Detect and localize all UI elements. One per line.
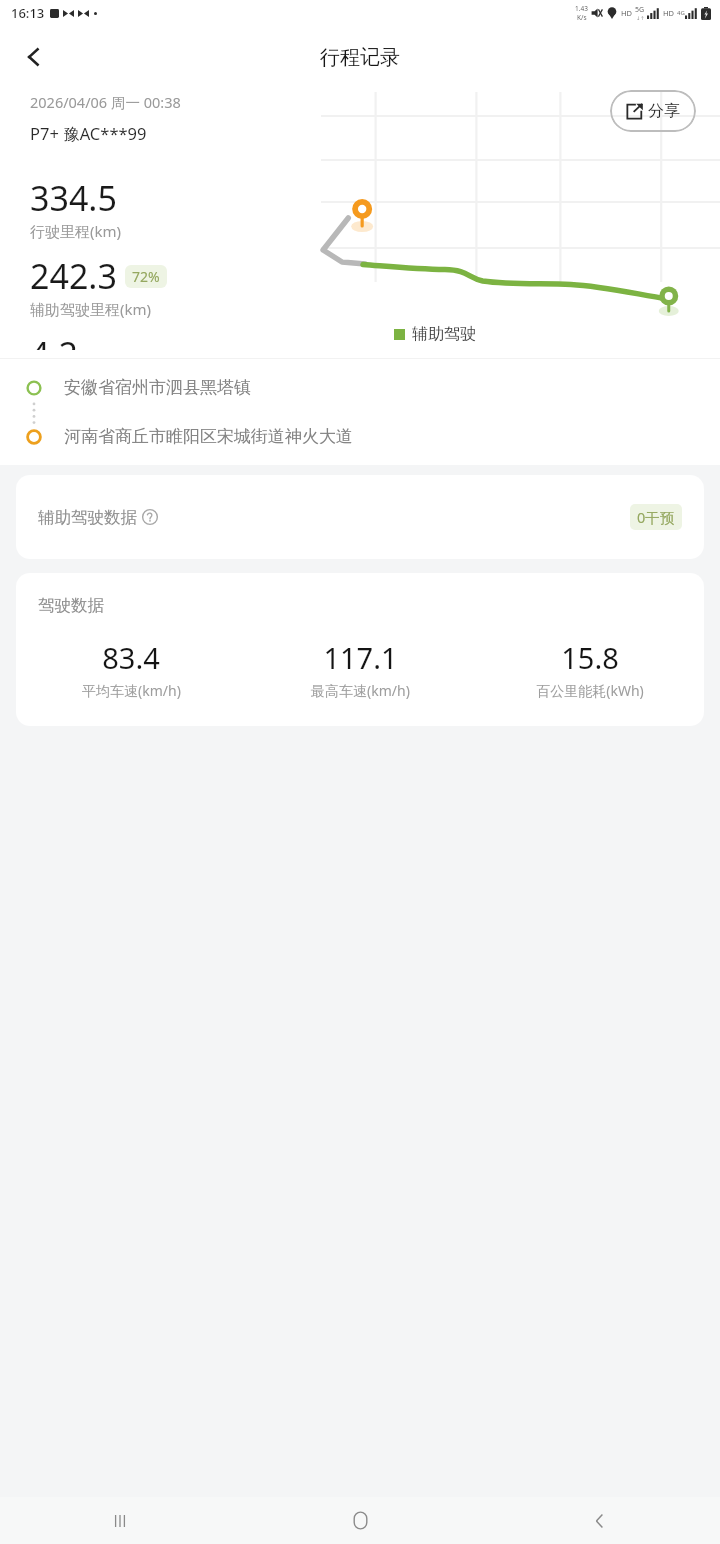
staticText: 2026/04/06 周一 00:38 bbox=[30, 92, 181, 112]
staticText: 百公里能耗(kWh) bbox=[536, 681, 644, 700]
button[interactable]: 返回 bbox=[480, 1497, 720, 1544]
staticText: 334.5 bbox=[30, 175, 117, 221]
button[interactable]: 辅助驾驶数据 bbox=[16, 475, 704, 559]
staticText: K/s bbox=[577, 13, 587, 22]
staticText: 行驶里程(km) bbox=[30, 221, 122, 241]
staticText: 5G bbox=[635, 5, 645, 15]
staticText: 驾驶数据 bbox=[38, 595, 104, 616]
button[interactable]: 返回 bbox=[10, 33, 58, 81]
staticText: 辅助驾驶数据 bbox=[38, 507, 137, 528]
staticText: 16:13 bbox=[11, 4, 45, 22]
staticText: 分享 bbox=[648, 101, 680, 121]
staticText: 辅助驾驶里程(km) bbox=[30, 299, 152, 319]
staticText: 平均车速(km/h) bbox=[82, 681, 181, 700]
staticText: 安徽省宿州市泗县黑塔镇 bbox=[64, 377, 251, 398]
staticText: 4G bbox=[677, 9, 685, 17]
staticText: 0干预 bbox=[637, 507, 675, 527]
staticText: 行程记录 bbox=[320, 45, 400, 70]
staticText: HD bbox=[663, 8, 675, 18]
staticText: 辅助驾驶 bbox=[412, 324, 476, 344]
staticText: HD bbox=[621, 8, 633, 18]
staticText: 72% bbox=[132, 267, 160, 286]
button[interactable]: 分享 bbox=[610, 90, 696, 132]
staticText: 117.1 bbox=[323, 638, 398, 677]
staticText: 河南省商丘市睢阳区宋城街道神火大道 bbox=[64, 426, 353, 447]
staticText: ↓↑ bbox=[636, 15, 645, 21]
button[interactable]: 最近任务 bbox=[0, 1497, 240, 1544]
button[interactable]: 主屏幕 bbox=[240, 1497, 480, 1544]
staticText: P7+ 豫AC***99 bbox=[30, 122, 147, 145]
staticText: 242.3 bbox=[30, 253, 117, 299]
staticText: 最高车速(km/h) bbox=[311, 681, 410, 700]
staticText: 4.2 bbox=[30, 331, 79, 350]
staticText: 83.4 bbox=[102, 638, 160, 677]
staticText: 15.8 bbox=[561, 638, 619, 677]
staticText: 1.43 bbox=[575, 4, 588, 13]
